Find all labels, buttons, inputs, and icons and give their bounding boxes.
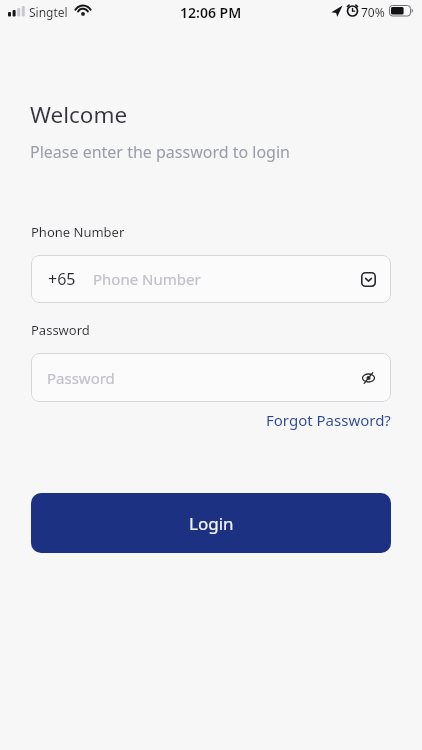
staticText: Password bbox=[31, 321, 90, 339]
staticText: 12:06 PM bbox=[180, 3, 242, 22]
staticText: Phone Number bbox=[93, 269, 201, 289]
staticText: Phone Number bbox=[31, 223, 125, 241]
button[interactable]: +65 bbox=[31, 255, 391, 303]
staticText: Password bbox=[47, 368, 115, 388]
button[interactable]: Login bbox=[31, 493, 391, 553]
staticText: Please enter the password to login bbox=[30, 141, 290, 163]
staticText: 70% bbox=[361, 4, 385, 20]
staticText: Login bbox=[189, 512, 234, 535]
staticText: Singtel bbox=[29, 4, 68, 20]
button[interactable]: Password bbox=[31, 353, 391, 402]
staticText: Welcome bbox=[30, 99, 128, 130]
staticText: +65 bbox=[48, 268, 76, 290]
button[interactable]: Forgot Password? bbox=[266, 410, 391, 430]
